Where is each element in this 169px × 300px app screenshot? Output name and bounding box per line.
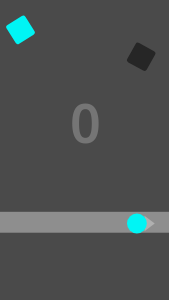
button[interactable]: Tap to jump [0, 0, 169, 300]
staticText: 0 [70, 85, 101, 159]
